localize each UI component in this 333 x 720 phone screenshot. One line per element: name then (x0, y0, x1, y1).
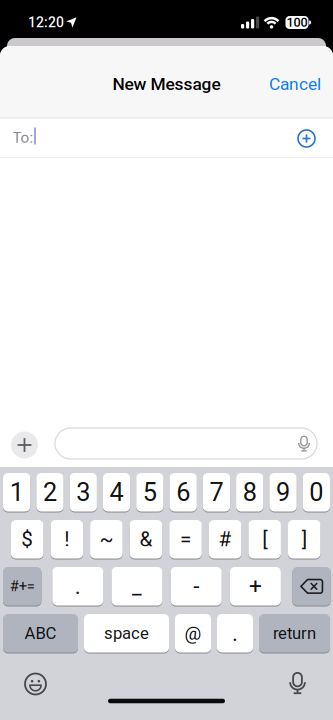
staticText: . (75, 573, 81, 600)
staticText: 6 (176, 477, 190, 507)
button[interactable]: ! (51, 520, 83, 559)
staticText: To: (12, 128, 33, 146)
button[interactable]: Emoji (24, 673, 46, 695)
staticText: space (104, 623, 149, 643)
button[interactable]: Add attachment (11, 431, 38, 458)
staticText: 8 (243, 477, 257, 507)
button[interactable]: return (259, 614, 330, 653)
staticText: Cancel (269, 74, 321, 94)
button[interactable]: _ (111, 567, 162, 606)
button[interactable]: #+= (3, 567, 41, 606)
staticText: 5 (143, 477, 157, 507)
button[interactable]: Delete (292, 567, 331, 606)
staticText: 0 (309, 477, 323, 507)
button[interactable]: ~ (90, 520, 123, 559)
staticText: + (249, 573, 262, 600)
button[interactable]: . (217, 614, 253, 653)
button[interactable]: 3 (70, 473, 97, 512)
staticText: # (219, 527, 232, 551)
staticText: @ (184, 622, 201, 644)
button[interactable]: ] (288, 520, 320, 559)
staticText: 4 (109, 477, 123, 507)
staticText: 7 (209, 477, 223, 507)
staticText: return (273, 623, 316, 643)
button[interactable]: = (169, 520, 202, 559)
staticText: _ (132, 574, 142, 599)
button[interactable]: 4 (103, 473, 130, 512)
button[interactable]: & (130, 520, 162, 559)
button[interactable]: Cancel (269, 74, 321, 94)
staticText: ! (64, 527, 69, 551)
button[interactable]: [ (248, 520, 281, 559)
staticText: 1 (10, 477, 24, 507)
staticText: - (193, 573, 199, 600)
staticText: ~ (99, 527, 113, 551)
staticText: New Message (112, 74, 220, 94)
staticText: $ (21, 527, 33, 551)
staticText: 3 (76, 477, 90, 507)
staticText: [ (262, 527, 267, 551)
button[interactable]: 8 (236, 473, 263, 512)
staticText: #+= (10, 578, 35, 595)
button[interactable]: + (230, 567, 281, 606)
button[interactable]: 1 (3, 473, 30, 512)
button[interactable]: Add Contact (293, 125, 319, 151)
button[interactable]: 9 (269, 473, 297, 512)
staticText: = (180, 527, 191, 551)
button[interactable]: @ (175, 614, 211, 653)
button[interactable]: ABC (3, 614, 78, 653)
button[interactable]: space (84, 614, 169, 653)
button[interactable]: - (171, 567, 222, 606)
button[interactable]: 5 (136, 473, 163, 512)
button[interactable]: Message field (55, 428, 317, 459)
button[interactable]: 6 (169, 473, 197, 512)
button[interactable]: 0 (303, 473, 330, 512)
staticText: 100 (286, 15, 307, 30)
staticText: ABC (24, 623, 56, 643)
button[interactable]: . (52, 567, 103, 606)
staticText: . (232, 620, 238, 647)
staticText: 9 (276, 477, 290, 507)
staticText: & (139, 527, 152, 551)
button[interactable]: # (209, 520, 241, 559)
button[interactable]: Dictate (288, 672, 306, 694)
staticText: 2 (43, 477, 57, 507)
button[interactable]: $ (11, 520, 43, 559)
staticText: ] (302, 527, 307, 551)
button[interactable]: 7 (203, 473, 230, 512)
button[interactable]: 2 (36, 473, 64, 512)
staticText: 12:20 (28, 14, 64, 31)
